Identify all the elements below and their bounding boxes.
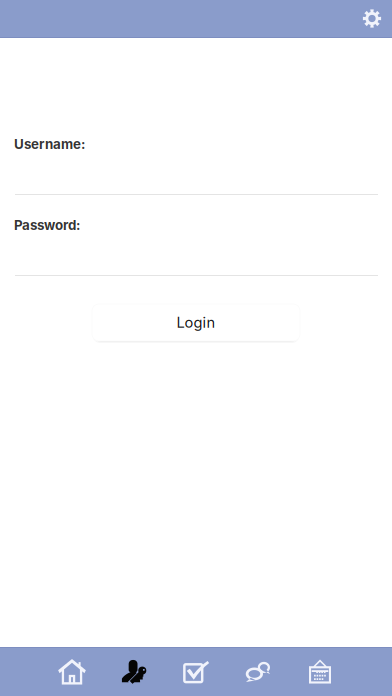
button[interactable]: Home (41, 647, 103, 696)
button[interactable]: Account (103, 647, 165, 696)
button[interactable]: Messages (227, 647, 289, 696)
staticText: Password: (14, 217, 80, 233)
button[interactable]: Calendar (289, 647, 351, 696)
staticText: Username: (14, 136, 85, 152)
button[interactable]: Tasks (165, 647, 227, 696)
staticText: Login (176, 314, 215, 331)
button[interactable]: Login (92, 304, 300, 341)
button[interactable]: Settings (352, 0, 392, 37)
